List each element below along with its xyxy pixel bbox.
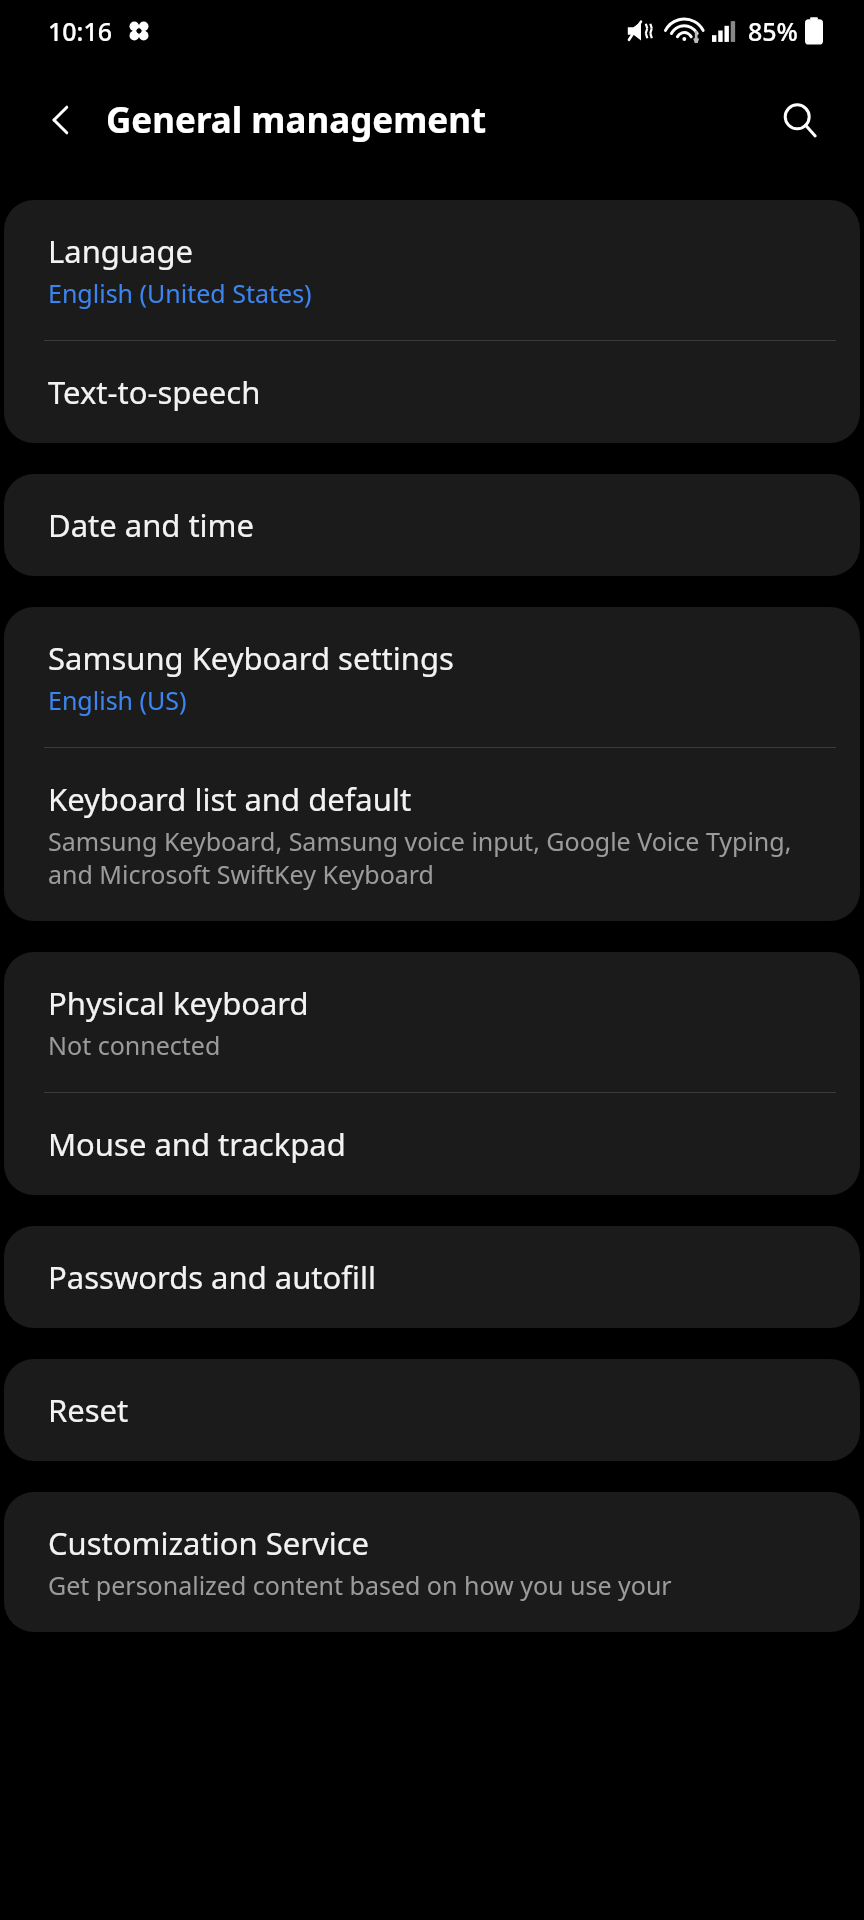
staticText: Samsung Keyboard settings (48, 637, 454, 679)
button[interactable]: Physical keyboard (4, 952, 860, 1092)
staticText: Keyboard list and default (48, 778, 412, 820)
staticText: Get personalized content based on how yo… (48, 1568, 672, 1602)
staticText: Physical keyboard (48, 982, 309, 1024)
staticText: General management (106, 96, 487, 144)
button[interactable]: Customization Service (4, 1492, 860, 1632)
button[interactable]: Reset (4, 1359, 860, 1461)
button[interactable]: Search (764, 84, 836, 156)
button[interactable]: Language (4, 200, 860, 340)
staticText: Not connected (48, 1028, 221, 1062)
button[interactable]: Date and time (4, 474, 860, 576)
staticText: Text-to-speech (48, 371, 261, 413)
staticText: English (United States) (48, 276, 312, 310)
staticText: Samsung Keyboard, Samsung voice input, G… (48, 824, 820, 891)
staticText: 10:16 (48, 14, 113, 48)
button[interactable]: Text-to-speech (4, 341, 860, 443)
button[interactable]: Back (26, 84, 98, 156)
button[interactable]: Samsung Keyboard settings (4, 607, 860, 747)
staticText: Customization Service (48, 1522, 370, 1564)
button[interactable]: Mouse and trackpad (4, 1093, 860, 1195)
staticText: Date and time (48, 504, 255, 546)
staticText: English (US) (48, 683, 187, 717)
staticText: Mouse and trackpad (48, 1123, 346, 1165)
button[interactable]: Passwords and autofill (4, 1226, 860, 1328)
staticText: Reset (48, 1389, 129, 1431)
staticText: Language (48, 230, 193, 272)
button[interactable]: Keyboard list and default (4, 748, 860, 921)
staticText: 85% (748, 14, 798, 48)
staticText: Passwords and autofill (48, 1256, 376, 1298)
